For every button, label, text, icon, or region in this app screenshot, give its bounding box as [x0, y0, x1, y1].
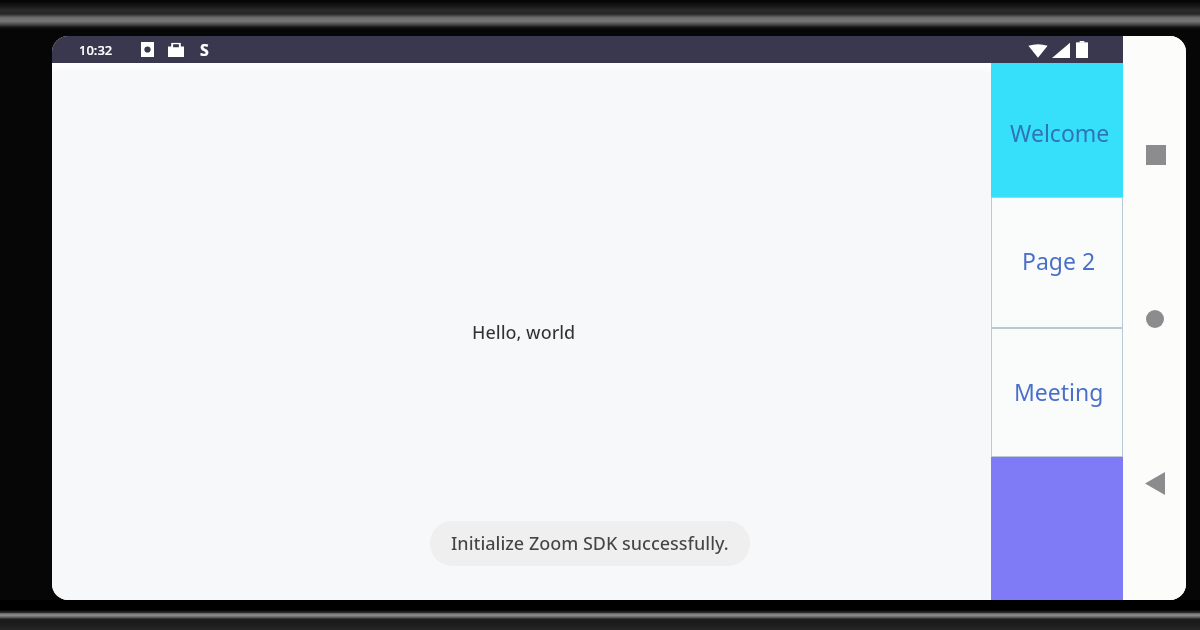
button[interactable]: Home	[1123, 300, 1186, 338]
button[interactable]: Welcome	[991, 63, 1123, 197]
staticText: Page 2	[1022, 245, 1096, 276]
staticText: Meeting	[1014, 376, 1104, 407]
button[interactable]: Recent apps	[1123, 136, 1186, 174]
staticText: 10:32	[79, 41, 113, 59]
staticText: S	[200, 39, 209, 61]
button[interactable]: Meeting	[991, 328, 1123, 457]
button[interactable]: Page 2	[991, 197, 1123, 328]
staticText: Initialize Zoom SDK successfully.	[451, 531, 729, 556]
button[interactable]: Back	[1123, 464, 1186, 502]
staticText: Hello, world	[472, 320, 576, 345]
staticText: Welcome	[1010, 117, 1110, 148]
